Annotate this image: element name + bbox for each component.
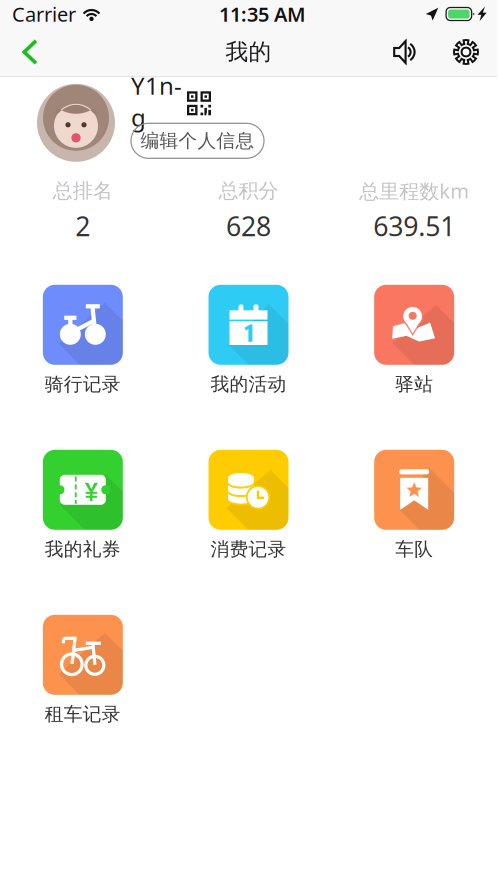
- staticText: 我的活动: [210, 373, 286, 396]
- staticText: 编辑个人信息: [140, 129, 254, 152]
- staticText: 我的: [225, 38, 271, 66]
- staticText: 总排名: [53, 178, 113, 203]
- button[interactable]: QR code: [187, 89, 211, 113]
- button[interactable]: Settings: [443, 29, 489, 75]
- button[interactable]: Sound: [383, 29, 431, 75]
- staticText: 我的礼券: [45, 538, 121, 561]
- staticText: 2: [75, 208, 90, 243]
- staticText: 628: [226, 208, 271, 243]
- staticText: 消费记录: [210, 538, 286, 561]
- staticText: 总里程数km: [359, 177, 469, 204]
- staticText: 639.51: [373, 208, 455, 243]
- button[interactable]: Back: [8, 29, 53, 75]
- staticText: 11:35 AM: [219, 1, 306, 27]
- staticText: Y1ng: [131, 69, 182, 133]
- button[interactable]: 驿站: [331, 285, 497, 395]
- button[interactable]: 租车记录: [0, 615, 166, 725]
- staticText: 骑行记录: [45, 373, 121, 396]
- button[interactable]: 我的礼券: [0, 450, 166, 560]
- button[interactable]: Avatar: [37, 84, 115, 162]
- staticText: 驿站: [395, 373, 433, 396]
- staticText: 租车记录: [45, 703, 121, 726]
- button[interactable]: 我的活动: [166, 285, 331, 395]
- staticText: 总积分: [218, 178, 278, 203]
- staticText: 车队: [395, 538, 433, 561]
- staticText: Carrier: [12, 1, 76, 27]
- button[interactable]: 消费记录: [166, 450, 331, 560]
- button[interactable]: 车队: [331, 450, 497, 560]
- button[interactable]: 编辑个人信息: [131, 123, 264, 158]
- button[interactable]: 骑行记录: [0, 285, 166, 395]
